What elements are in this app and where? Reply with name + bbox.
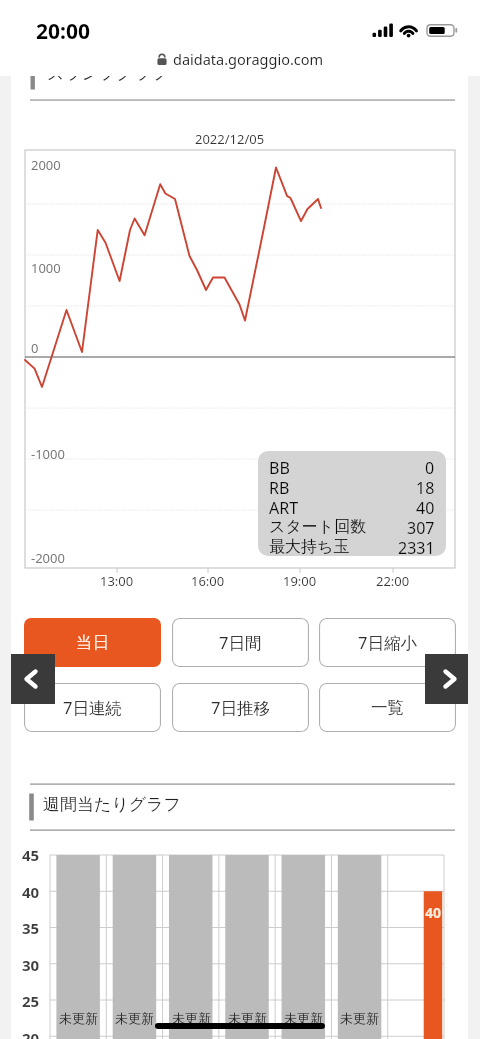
staticText: 16:00	[191, 572, 225, 590]
staticText: 40	[416, 497, 435, 517]
staticText: 7日連続	[63, 696, 122, 719]
staticText: -2000	[31, 549, 65, 567]
staticText: 7日縮小	[358, 631, 417, 654]
staticText: 7日推移	[211, 696, 270, 719]
button[interactable]: 当日	[24, 618, 161, 667]
staticText: -1000	[31, 445, 65, 463]
staticText: 未更新	[284, 1010, 323, 1026]
staticText: 40	[22, 882, 40, 902]
staticText: 一覧	[371, 697, 404, 718]
staticText: 1000	[31, 259, 61, 277]
staticText: 7日間	[219, 631, 262, 654]
staticText: 2022/12/05	[195, 130, 265, 148]
staticText: 未更新	[228, 1010, 267, 1026]
staticText: スタート回数	[269, 517, 367, 537]
staticText: 週間当たりグラフ	[43, 794, 181, 815]
staticText: 未更新	[59, 1010, 98, 1026]
staticText: 当日	[76, 632, 109, 653]
staticText: 25	[22, 991, 40, 1011]
staticText: daidata.goraggio.com	[173, 49, 324, 69]
staticText: 20:00	[36, 17, 90, 46]
button[interactable]: 7日縮小	[319, 618, 456, 667]
staticText: 40	[425, 903, 442, 922]
staticText: 未更新	[115, 1010, 154, 1026]
button[interactable]: 7日推移	[172, 683, 309, 732]
staticText: 未更新	[172, 1010, 211, 1026]
button[interactable]: 7日間	[172, 618, 309, 667]
staticText: BB	[269, 457, 290, 477]
staticText: 18	[416, 477, 435, 497]
staticText: 30	[22, 955, 40, 975]
staticText: RB	[269, 477, 290, 497]
staticText: 0	[31, 339, 39, 357]
staticText: 45	[22, 845, 40, 865]
staticText: 最大持ち玉	[269, 537, 350, 556]
staticText: 19:00	[283, 572, 317, 590]
button[interactable]: Next	[425, 654, 468, 704]
staticText: 35	[22, 918, 40, 938]
staticText: 未更新	[340, 1010, 379, 1026]
staticText: 20	[22, 1028, 40, 1039]
staticText: 307	[407, 517, 435, 537]
staticText: ART	[269, 497, 299, 517]
button[interactable]: 一覧	[319, 683, 456, 732]
staticText: 22:00	[376, 572, 410, 590]
staticText: 0	[425, 457, 435, 477]
staticText: スランプグラフ	[47, 76, 169, 84]
staticText: 13:00	[100, 572, 134, 590]
button[interactable]: 7日連続	[24, 683, 161, 732]
staticText: 2331	[398, 537, 435, 556]
staticText: 2000	[31, 156, 61, 174]
button[interactable]: Previous	[11, 654, 55, 704]
